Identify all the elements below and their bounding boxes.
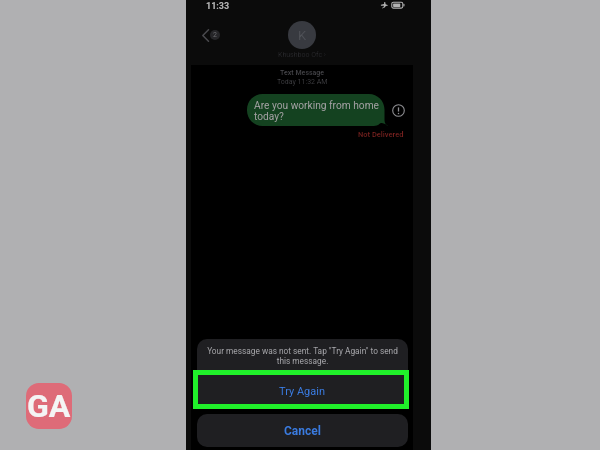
staticText: Your message was not sent. Tap "Try Agai… <box>206 346 399 366</box>
staticText: Not Delivered <box>358 130 404 139</box>
staticText: Are you working from home today? <box>254 100 382 123</box>
staticText: Text Message <box>280 69 325 77</box>
button[interactable]: Try Again <box>197 370 408 409</box>
other: Airplane mode and battery <box>380 2 408 10</box>
staticText: Today 11:32 AM <box>277 78 328 86</box>
staticText: Cancel <box>284 424 321 438</box>
staticText: 2 <box>213 31 217 39</box>
staticText: Khushboo Ofc › <box>278 51 326 59</box>
staticText: GA <box>27 387 71 425</box>
button[interactable]: GA logo <box>26 383 72 429</box>
other: Message not delivered <box>392 104 405 117</box>
button[interactable]: Back <box>202 26 220 44</box>
staticText: 11:33 <box>206 1 230 12</box>
button[interactable]: Cancel <box>197 414 408 447</box>
staticText: Try Again <box>279 385 326 398</box>
button[interactable]: Contact avatar <box>288 21 316 49</box>
staticText: K <box>298 28 307 43</box>
